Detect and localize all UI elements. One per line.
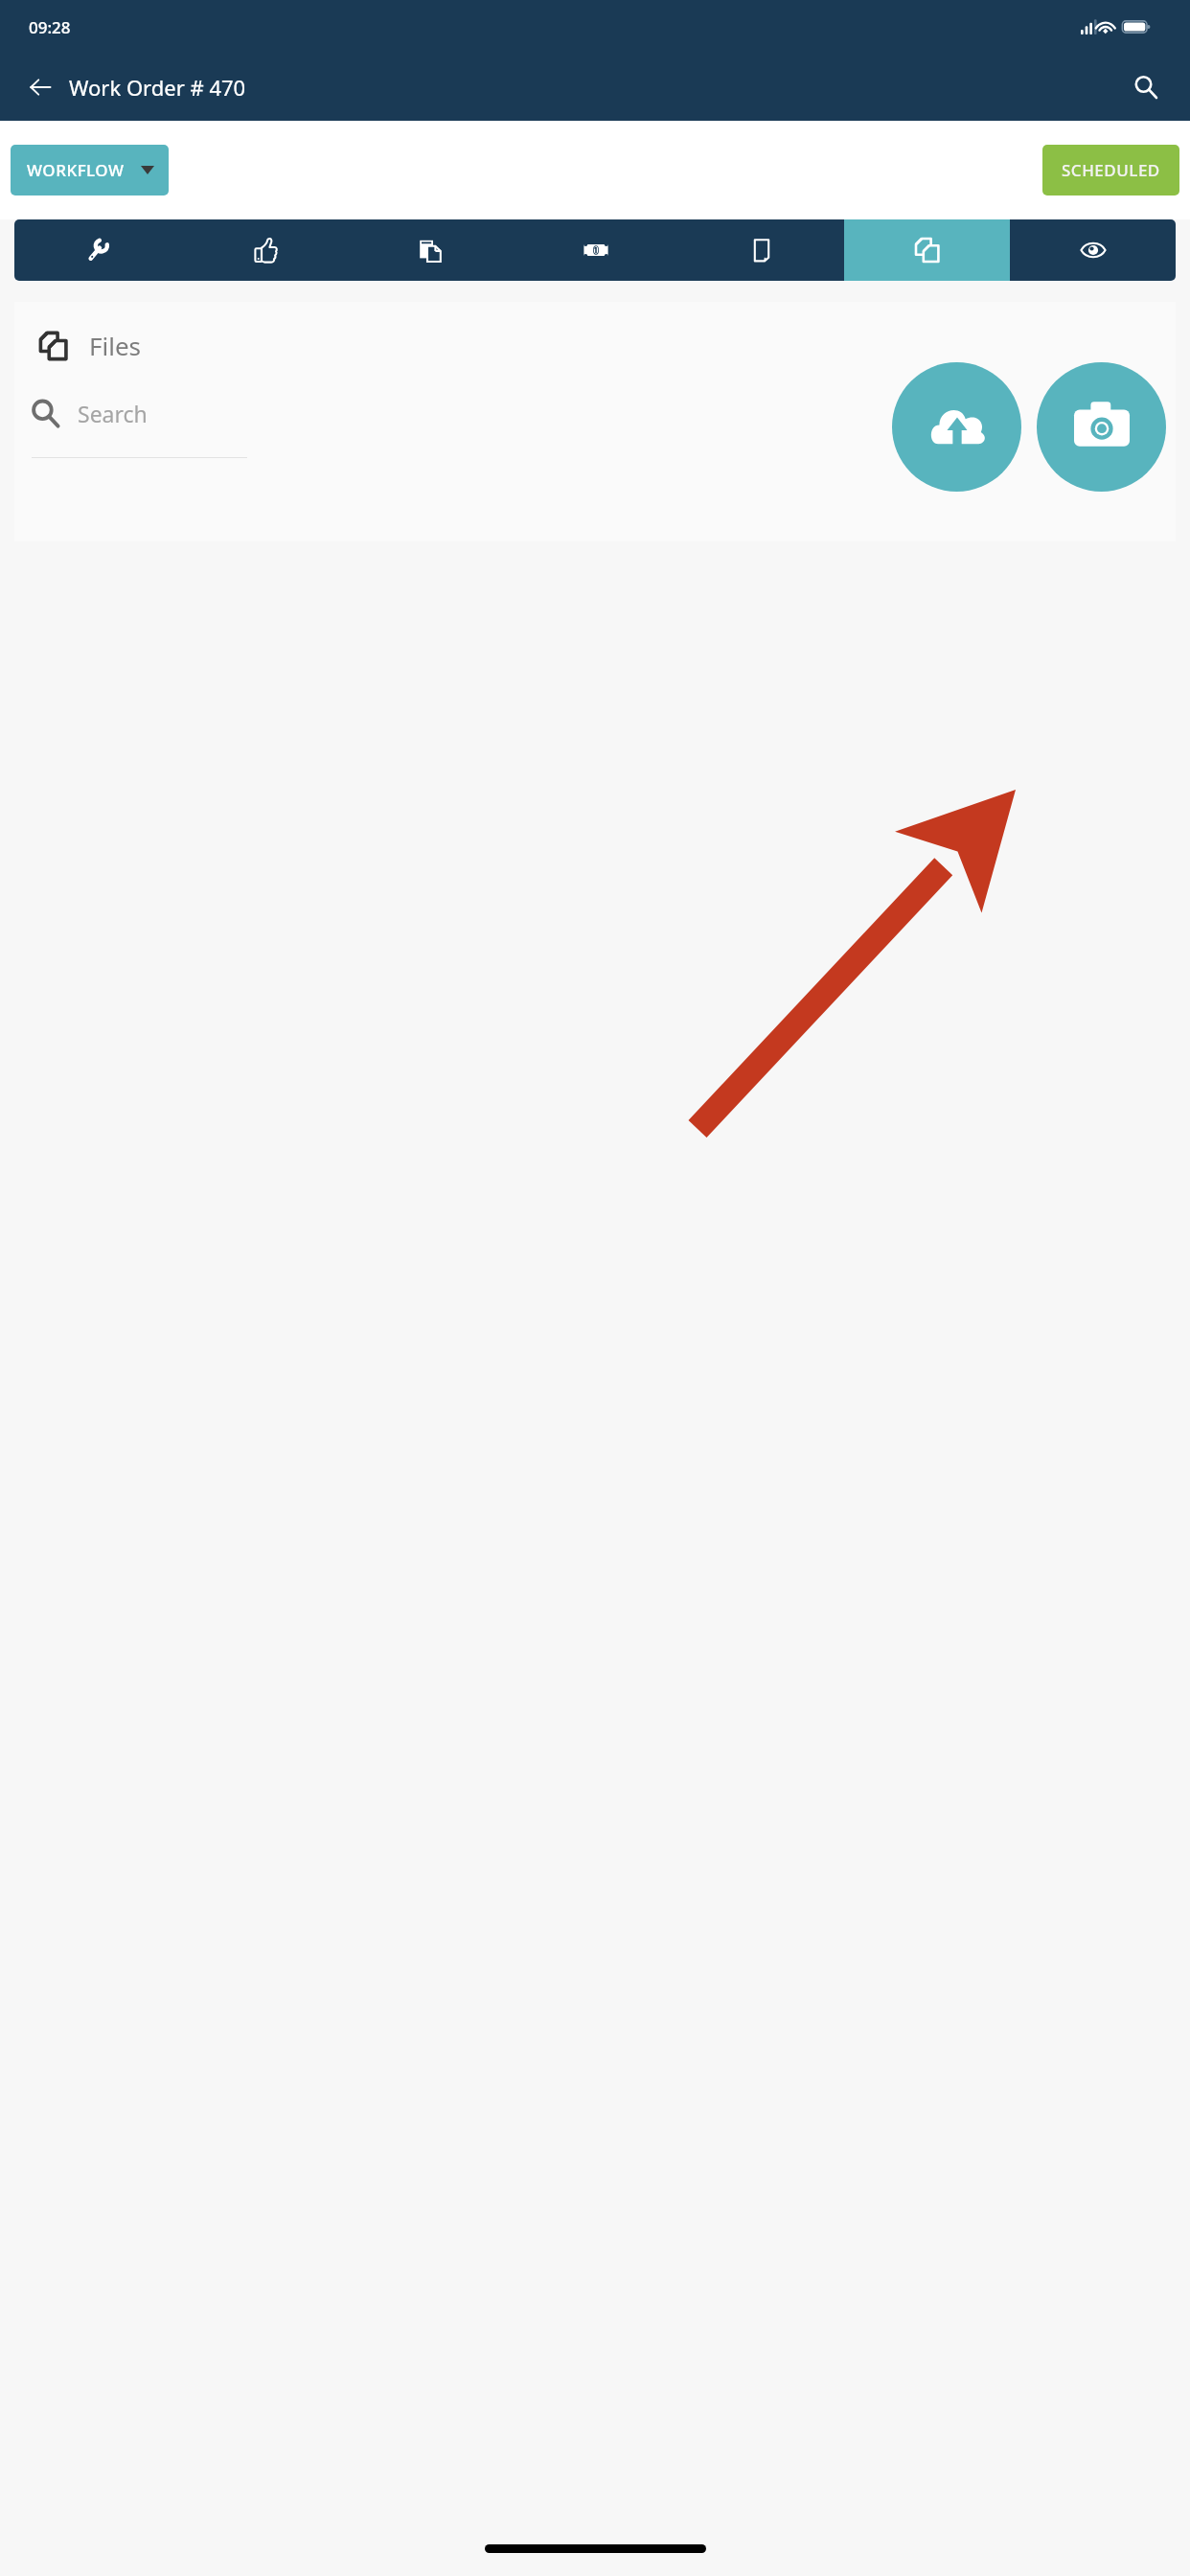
button[interactable]: Costs [513, 219, 678, 281]
button[interactable]: WORKFLOW [11, 145, 169, 195]
button[interactable]: Back [21, 68, 59, 106]
button[interactable]: SCHEDULED [1042, 145, 1179, 195]
button[interactable]: Approvals [181, 219, 347, 281]
staticText: 09:28 [29, 16, 71, 38]
button[interactable]: Upload file [892, 362, 1021, 492]
button[interactable]: Watch [1010, 219, 1176, 281]
staticText: SCHEDULED [1062, 159, 1160, 181]
staticText: WORKFLOW [27, 159, 125, 181]
button[interactable]: Notes [678, 219, 844, 281]
button[interactable]: Files [844, 219, 1010, 281]
button[interactable]: Documents [347, 219, 513, 281]
button[interactable]: Take photo [1037, 362, 1166, 492]
staticText: Files [89, 329, 142, 362]
button[interactable]: Work [14, 219, 181, 281]
button[interactable]: Search [1125, 66, 1167, 108]
staticText: Work Order # 470 [69, 73, 246, 102]
staticText: Search [78, 399, 148, 428]
